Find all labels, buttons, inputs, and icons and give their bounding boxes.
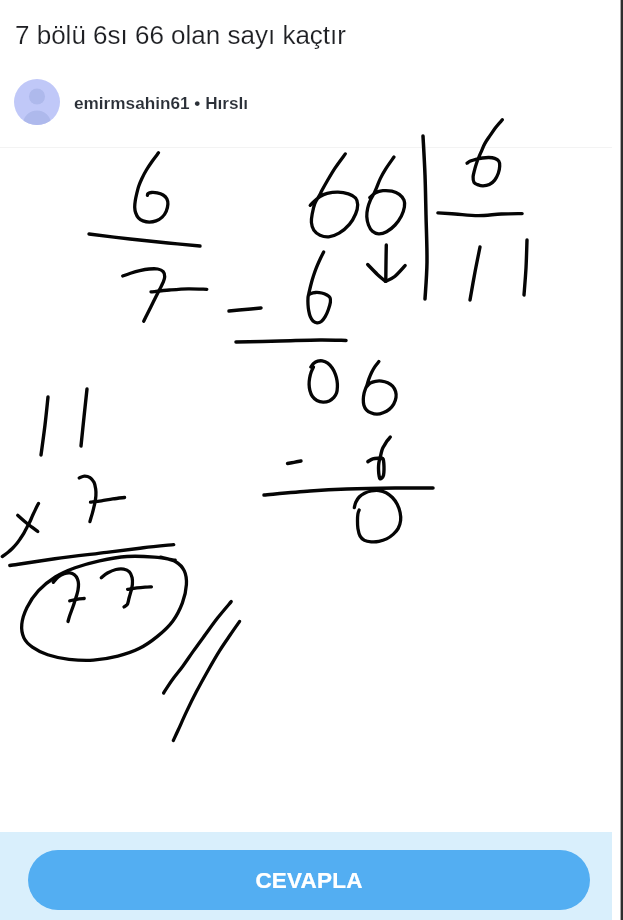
staticText: CEVAPLA: [255, 868, 363, 893]
button[interactable]: CEVAPLA: [28, 850, 590, 910]
staticText: emirmsahin61 • Hırslı: [74, 93, 249, 112]
staticText: 7 bölü 6sı 66 olan sayı kaçtır: [15, 20, 346, 49]
button[interactable]: emirmsahin61 • Hırslı: [14, 79, 249, 125]
